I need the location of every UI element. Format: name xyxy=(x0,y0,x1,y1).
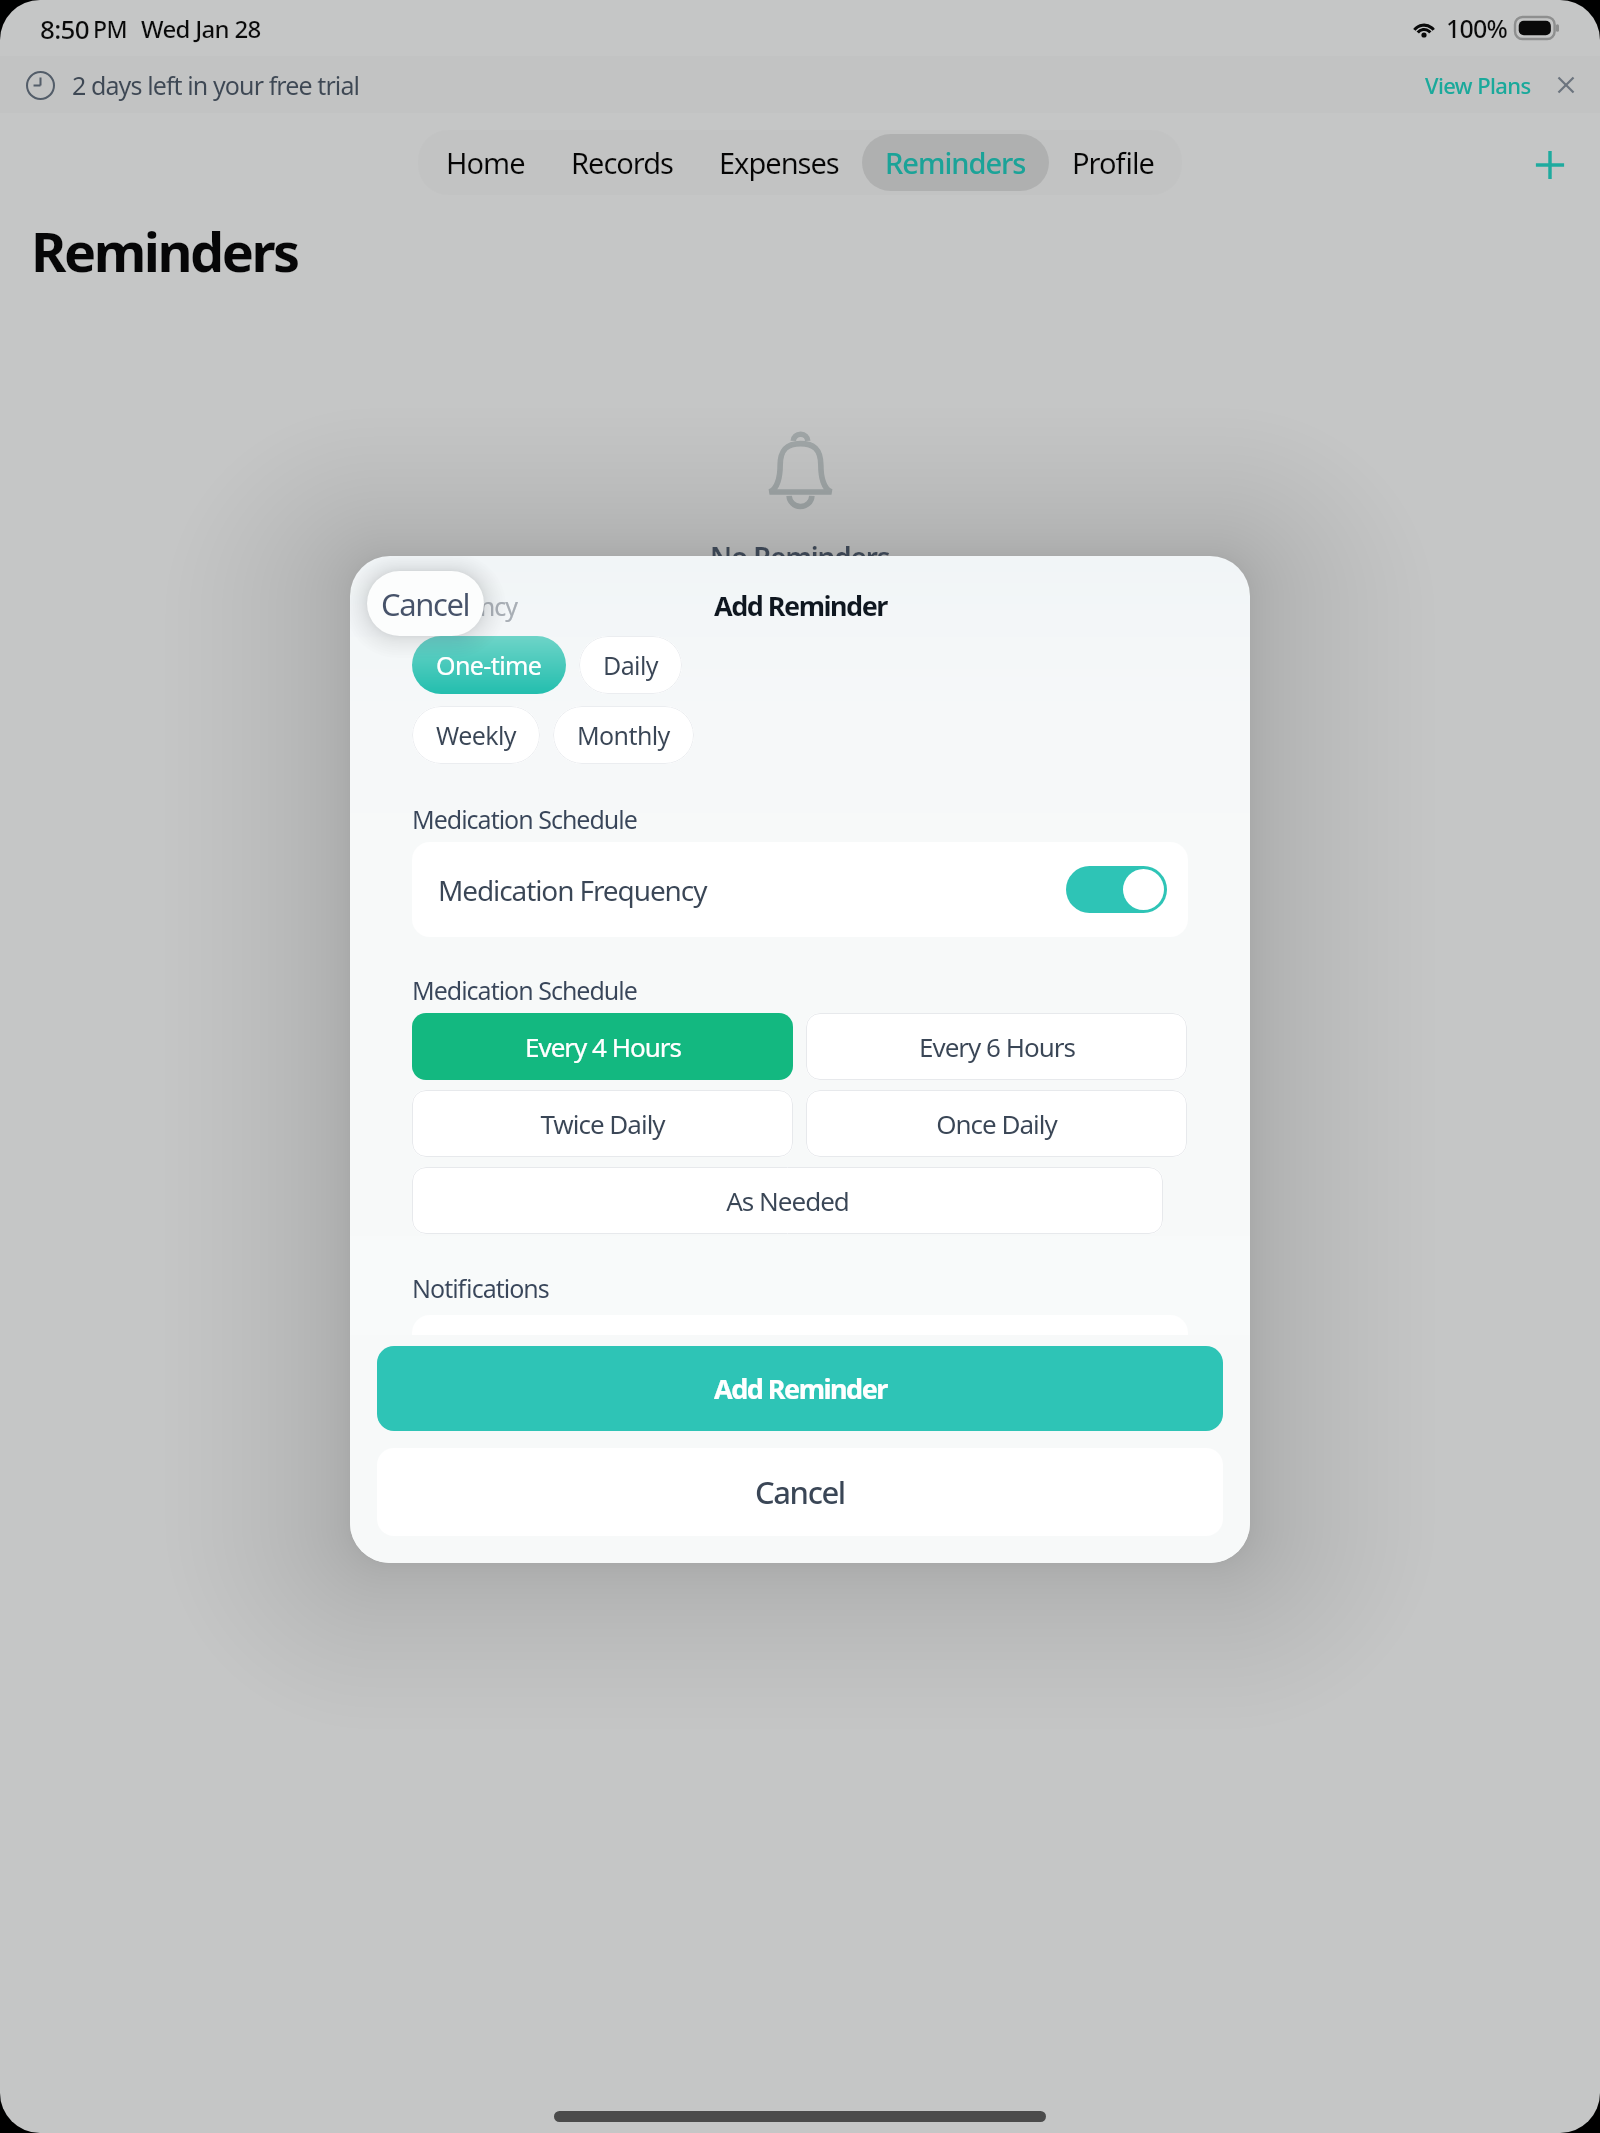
staticText: Records xyxy=(571,143,673,182)
staticText: Medication Schedule xyxy=(412,802,637,836)
staticText: Wed Jan 28 xyxy=(141,12,261,45)
button[interactable]: Once Daily xyxy=(806,1090,1187,1157)
staticText: Every 6 Hours xyxy=(919,1029,1075,1064)
button[interactable]: Monthly xyxy=(553,706,694,764)
staticText: Expenses xyxy=(719,143,839,182)
button[interactable]: Cancel xyxy=(367,571,484,636)
button[interactable]: Records xyxy=(548,134,696,191)
staticText: Frequency xyxy=(404,589,518,623)
staticText: Reminders xyxy=(885,143,1026,182)
staticText: No Reminders xyxy=(710,538,890,576)
staticText: One-time xyxy=(436,648,542,682)
staticText: Once Daily xyxy=(936,1106,1057,1141)
staticText: PM xyxy=(93,13,128,44)
staticText: As Needed xyxy=(726,1183,849,1218)
staticText: Daily xyxy=(603,648,658,682)
staticText: Reminders xyxy=(31,214,298,288)
button[interactable]: Weekly xyxy=(412,706,540,764)
button[interactable]: Every 4 Hours xyxy=(412,1013,793,1080)
staticText: 100% xyxy=(1446,11,1508,45)
button[interactable]: Dismiss trial banner xyxy=(1553,72,1579,98)
staticText: 8:50 xyxy=(40,11,89,46)
button[interactable]: Cancel xyxy=(377,1448,1223,1536)
staticText: View Plans xyxy=(1425,70,1531,100)
button[interactable]: Reminders xyxy=(862,134,1049,191)
staticText: Medication Frequency xyxy=(438,871,707,909)
staticText: Weekly xyxy=(436,718,516,752)
button[interactable]: One-time xyxy=(412,636,566,694)
staticText: Notifications xyxy=(412,1271,549,1305)
staticText: Every 4 Hours xyxy=(525,1029,681,1064)
button[interactable]: Medication frequency toggle xyxy=(1066,866,1167,913)
button[interactable]: Medication Frequency xyxy=(412,842,1188,937)
staticText: Medication Schedule xyxy=(412,973,637,1007)
button[interactable]: View Plans xyxy=(1421,61,1535,109)
button[interactable]: Daily xyxy=(579,636,682,694)
button[interactable]: Twice Daily xyxy=(412,1090,793,1157)
staticText: 2 days left in your free trial xyxy=(72,68,360,102)
staticText: Cancel xyxy=(381,583,470,625)
staticText: Monthly xyxy=(577,718,670,752)
staticText: Add Reminder xyxy=(714,1370,887,1407)
staticText: Profile xyxy=(1072,143,1154,182)
button[interactable]: Profile xyxy=(1049,134,1177,191)
button[interactable]: Add Reminder xyxy=(377,1346,1223,1431)
staticText: Home xyxy=(446,143,525,182)
staticText: Add Reminder xyxy=(714,587,887,624)
button[interactable]: Every 6 Hours xyxy=(806,1013,1187,1080)
button[interactable]: Add reminder xyxy=(1519,134,1581,196)
button[interactable]: As Needed xyxy=(412,1167,1163,1234)
button[interactable]: Expenses xyxy=(696,134,862,191)
staticText: Twice Daily xyxy=(540,1106,665,1141)
staticText: Cancel xyxy=(755,1471,845,1513)
button[interactable]: Home xyxy=(423,134,548,191)
